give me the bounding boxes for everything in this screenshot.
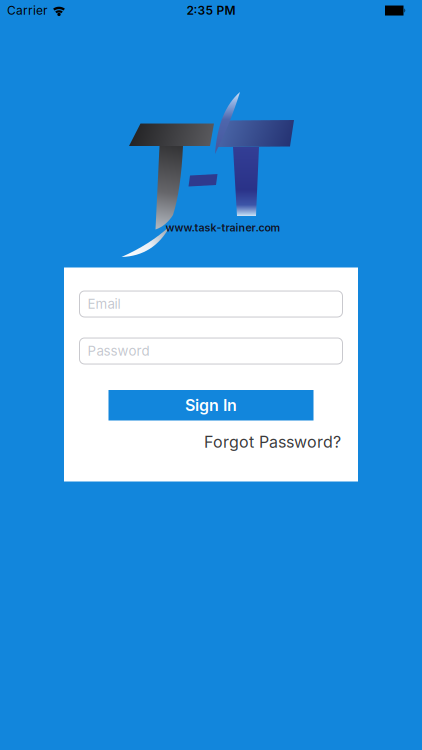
textField[interactable]: Email: [87, 296, 342, 312]
staticText: 2:35 PM: [186, 3, 235, 18]
button[interactable]: Forgot Password?: [204, 432, 341, 451]
staticText: Email: [87, 296, 120, 312]
staticText: Password: [87, 343, 149, 359]
staticText: Password: [87, 343, 149, 359]
staticText: Forgot Password?: [204, 432, 341, 451]
staticText: Sign In: [185, 396, 237, 415]
staticText: Email: [87, 296, 120, 312]
textField[interactable]: Password: [87, 343, 342, 359]
staticText: www.task-trainer.com: [165, 221, 280, 234]
staticText: Carrier: [7, 3, 48, 18]
button[interactable]: Sign In: [108, 390, 313, 420]
